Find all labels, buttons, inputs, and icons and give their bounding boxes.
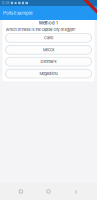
staticText: Cairo	[44, 35, 53, 40]
staticText: Mecca	[43, 47, 54, 52]
staticText: ‹	[75, 187, 78, 196]
button[interactable]: Recent apps	[14, 184, 28, 198]
button[interactable]: Denmark	[5, 57, 91, 66]
staticText: 12:08	[1, 1, 9, 5]
button[interactable]: Mecca	[5, 45, 91, 54]
staticText: Which of these is the capital city of Eg…	[5, 27, 75, 32]
staticText: Mogadishu	[39, 71, 57, 76]
button[interactable]: Cairo	[5, 33, 91, 42]
button[interactable]: Home	[41, 184, 55, 198]
staticText: Polls Example	[3, 10, 33, 16]
staticText: Denmark	[40, 59, 56, 64]
staticText: Method 1	[39, 20, 58, 26]
button[interactable]: Mogadishu	[5, 69, 91, 78]
button[interactable]: Back	[69, 184, 83, 198]
